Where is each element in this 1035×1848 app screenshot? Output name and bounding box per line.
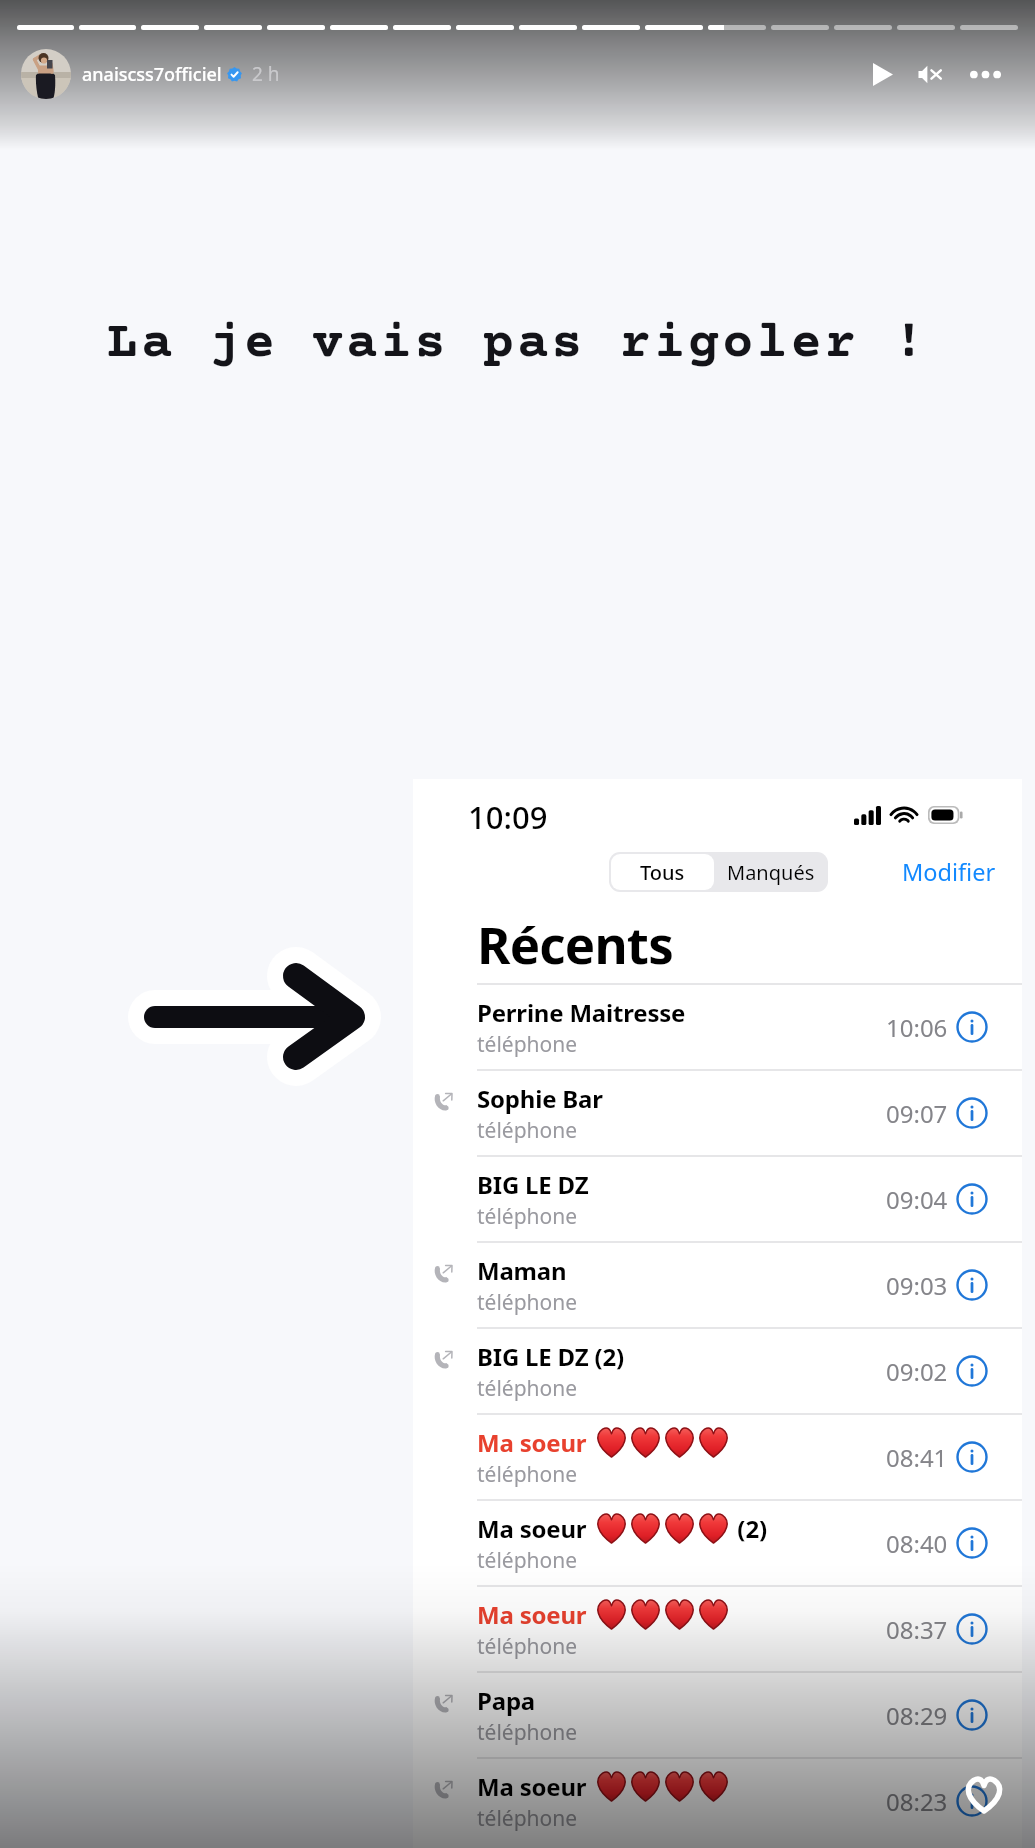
staticText: 08:40 [886, 1527, 948, 1560]
button[interactable]: Papa [413, 1671, 1022, 1757]
staticText: 08:29 [886, 1699, 948, 1732]
staticText: BIG LE DZ (2) [477, 1340, 624, 1373]
button[interactable]: More info [954, 1783, 990, 1819]
staticText: 09:03 [886, 1269, 948, 1302]
staticText: (2) [731, 1512, 768, 1545]
button[interactable]: Ma soeur [413, 1499, 1022, 1585]
staticText: 08:23 [886, 1785, 948, 1818]
staticText: 08:41 [886, 1441, 948, 1474]
staticText: téléphone [477, 1718, 578, 1747]
button[interactable]: More info [954, 1353, 990, 1389]
button[interactable]: More info [954, 1611, 990, 1647]
button[interactable]: BIG LE DZ [413, 1155, 1022, 1241]
button[interactable]: Mute [912, 56, 948, 92]
staticText: Modifier [902, 856, 996, 888]
staticText: 2 h [252, 61, 280, 87]
staticText: 10:09 [468, 796, 548, 834]
button[interactable]: Profile photo [21, 49, 71, 99]
staticText: téléphone [477, 1202, 578, 1231]
button[interactable]: Manqués [714, 852, 828, 892]
button[interactable]: Ma soeur [413, 1585, 1022, 1671]
staticText: téléphone [477, 1460, 578, 1489]
staticText: téléphone [477, 1546, 578, 1575]
button[interactable]: Ma soeur [413, 1757, 1022, 1843]
staticText: Ma soeur [477, 1512, 593, 1545]
staticText: 09:02 [886, 1355, 948, 1388]
staticText: Ma soeur [477, 1426, 593, 1459]
button[interactable]: More info [954, 1439, 990, 1475]
button[interactable]: More info [954, 1009, 990, 1045]
staticText: BIG LE DZ [477, 1168, 589, 1201]
staticText: Papa [477, 1684, 536, 1717]
button[interactable]: Tous [611, 854, 714, 890]
button[interactable]: Ma soeur [413, 1413, 1022, 1499]
staticText: Sophie Bar [477, 1082, 603, 1115]
staticText: Tous [640, 859, 685, 886]
staticText: Récents [477, 909, 673, 978]
staticText: téléphone [477, 1030, 578, 1059]
button[interactable]: More options [966, 55, 1004, 93]
button[interactable]: Perrine Maitresse [413, 983, 1022, 1069]
staticText: Manqués [727, 859, 815, 886]
staticText: téléphone [477, 1632, 578, 1661]
button[interactable]: Like [955, 1768, 1015, 1828]
staticText: 09:04 [886, 1183, 948, 1216]
staticText: 09:07 [886, 1097, 948, 1130]
button[interactable]: More info [954, 1267, 990, 1303]
button[interactable]: Maman [413, 1241, 1022, 1327]
staticText: téléphone [477, 1374, 578, 1403]
button[interactable]: BIG LE DZ (2) [413, 1327, 1022, 1413]
button[interactable]: More info [954, 1181, 990, 1217]
staticText: téléphone [477, 1804, 578, 1833]
button[interactable]: More info [954, 1525, 990, 1561]
staticText: 08:37 [886, 1613, 948, 1646]
button[interactable]: Sophie Bar [413, 1069, 1022, 1155]
staticText: Ma soeur [477, 1598, 593, 1631]
staticText: téléphone [477, 1116, 578, 1145]
staticText: anaiscss7officiel [82, 62, 222, 87]
staticText: 10:06 [886, 1011, 948, 1044]
button[interactable]: Play [864, 56, 900, 92]
staticText: La je vais pas rigoler ! [107, 315, 928, 373]
staticText: Perrine Maitresse [477, 996, 686, 1029]
staticText: Ma soeur [477, 1770, 593, 1803]
button[interactable]: More info [954, 1095, 990, 1131]
staticText: téléphone [477, 1288, 578, 1317]
staticText: Maman [477, 1254, 567, 1287]
button[interactable]: More info [954, 1697, 990, 1733]
button[interactable]: Modifier [898, 852, 1000, 892]
